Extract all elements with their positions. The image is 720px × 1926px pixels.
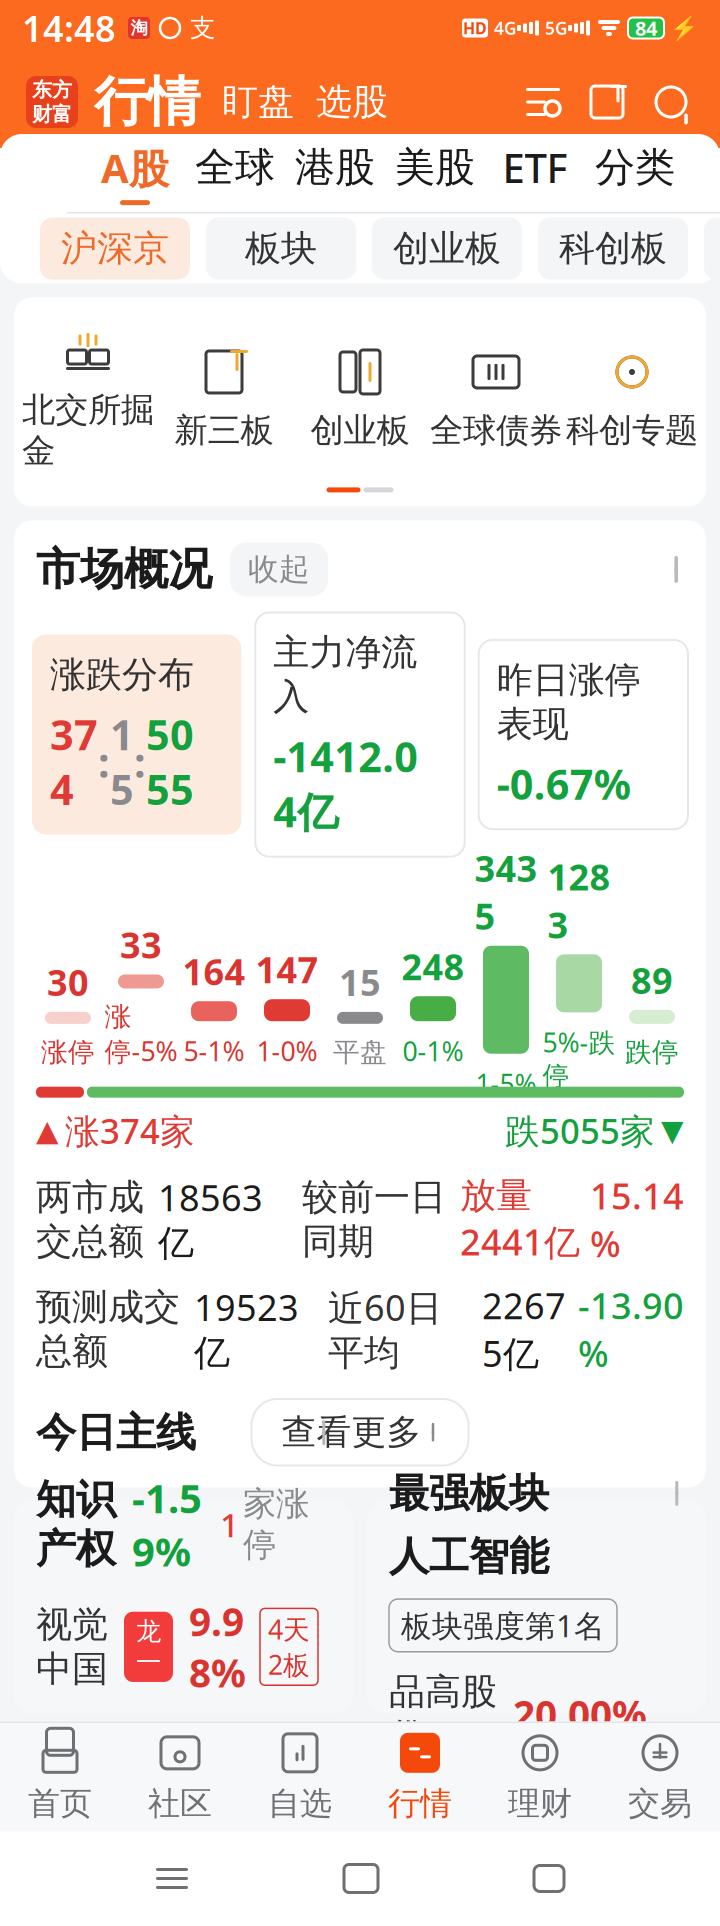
staticText: 20.00%: [513, 1688, 647, 1740]
staticText: 昨日涨停表现: [497, 658, 641, 746]
staticText: 0-1%: [402, 1033, 463, 1069]
staticText: 主力净流入: [273, 630, 417, 719]
staticText: 创业板: [310, 410, 409, 451]
staticText: -0.82%: [206, 1716, 295, 1819]
staticText: 财富: [32, 102, 72, 127]
staticText: 市场概况: [36, 542, 212, 596]
staticText: 全球: [195, 143, 275, 192]
staticText: 4G: [494, 16, 517, 39]
button[interactable]: 交易: [600, 1722, 720, 1830]
button[interactable]: 科创专题: [564, 346, 700, 451]
button[interactable]: 板块: [206, 217, 356, 279]
button[interactable]: 更多分类: [717, 137, 720, 209]
button[interactable]: 创业板: [372, 217, 522, 279]
button[interactable]: A股: [85, 137, 185, 209]
staticText: 22675亿: [482, 1281, 566, 1377]
button[interactable]: 港股: [285, 137, 385, 209]
staticText: 今日主线: [36, 1408, 196, 1457]
button[interactable]: 自选设置: [520, 79, 566, 125]
staticText: 19523亿: [194, 1283, 299, 1375]
staticText: 预测成交总额: [36, 1285, 180, 1373]
staticText: 家涨停: [243, 1483, 309, 1565]
staticText: 全球债券: [430, 410, 562, 451]
staticText: ⚡: [670, 15, 698, 41]
staticText: 人工智能: [389, 1532, 549, 1581]
staticText: 跌停: [625, 1036, 679, 1069]
staticText: 147: [255, 945, 318, 993]
button[interactable]: 新三板: [156, 346, 292, 451]
staticText: 收起: [248, 551, 310, 588]
button[interactable]: 涨跌分布: [32, 634, 241, 834]
button[interactable]: 最强板块: [367, 1501, 706, 1713]
staticText: 知识产权: [36, 1475, 116, 1573]
button[interactable]: 理财: [480, 1722, 600, 1830]
button[interactable]: 主力净流入: [255, 612, 465, 857]
button[interactable]: 社区: [120, 1722, 240, 1830]
button[interactable]: 自选: [240, 1722, 360, 1830]
staticText: 沪深京: [61, 226, 169, 271]
staticText: 5%-跌停: [542, 1024, 615, 1093]
button[interactable]: 首页: [0, 1722, 120, 1830]
staticText: 板块强度第1名: [401, 1605, 605, 1646]
staticText: 15: [110, 707, 134, 817]
staticText: 东方: [32, 77, 72, 102]
staticText: 较前一日同期: [302, 1175, 446, 1264]
staticText: 涨停: [41, 1036, 95, 1069]
staticText: 89: [631, 956, 673, 1004]
staticText: 5-1%: [183, 1033, 244, 1069]
button[interactable]: 市场概况: [14, 520, 706, 612]
button[interactable]: 全球债券: [428, 346, 564, 451]
button[interactable]: 沪深京: [40, 217, 190, 279]
staticText: ▼: [661, 1114, 684, 1147]
button[interactable]: 选股: [294, 80, 388, 124]
staticText: 1283: [547, 853, 610, 948]
staticText: 淘: [130, 17, 147, 39]
button[interactable]: 搜索: [630, 79, 694, 125]
staticText: 平盘: [333, 1036, 387, 1069]
staticText: -1.59%: [132, 1471, 202, 1577]
staticText: 创业板: [393, 226, 501, 271]
staticText: 市值龙头: [132, 1736, 182, 1799]
button[interactable]: 东方财富: [26, 76, 78, 128]
button[interactable]: 盯盘: [200, 80, 294, 124]
staticText: 涨374家: [65, 1108, 195, 1154]
staticText: 人民网: [36, 1723, 108, 1812]
staticText: 两市成交总额: [36, 1175, 144, 1264]
staticText: 3435: [474, 844, 537, 940]
button[interactable]: 分享: [566, 79, 630, 125]
button[interactable]: 行情: [78, 69, 200, 135]
staticText: 美股: [395, 143, 475, 192]
staticText: 1: [220, 1502, 239, 1546]
button[interactable]: 行情: [360, 1722, 480, 1830]
button[interactable]: 美股: [385, 137, 485, 209]
button[interactable]: 全球: [185, 137, 285, 209]
staticText: 行情: [94, 69, 200, 135]
staticText: 放量2441亿: [460, 1173, 580, 1265]
staticText: 交易: [628, 1784, 692, 1823]
staticText: 社区: [148, 1784, 212, 1823]
staticText: 1-5%: [475, 1066, 536, 1101]
button[interactable]: 分类: [585, 137, 685, 209]
button[interactable]: ETF: [485, 137, 585, 209]
staticText: 涨停-5%: [104, 1000, 177, 1069]
button[interactable]: 科创板: [538, 217, 688, 279]
staticText: -1412.04亿: [273, 729, 418, 839]
button[interactable]: 今日主线: [14, 1501, 353, 1713]
staticText: 分类: [595, 143, 675, 192]
staticText: -13.90%: [578, 1281, 684, 1377]
staticText: 查看更多: [282, 1411, 422, 1453]
staticText: 港股: [295, 143, 375, 192]
staticText: 品高股份: [389, 1670, 497, 1758]
staticText: 选股: [316, 80, 388, 124]
staticText: 84: [635, 15, 657, 41]
staticText: 视觉中国: [36, 1603, 108, 1691]
button[interactable]: 北交所掘金: [20, 325, 156, 471]
staticText: HD: [463, 17, 487, 39]
staticText: 首页: [28, 1784, 92, 1823]
button[interactable]: 昨日涨停表现: [479, 640, 688, 829]
button[interactable]: 创业板: [292, 346, 428, 451]
button[interactable]: 查看更多: [252, 1399, 468, 1465]
staticText: 龙一: [136, 1616, 161, 1678]
staticText: -0.67%: [497, 756, 631, 811]
